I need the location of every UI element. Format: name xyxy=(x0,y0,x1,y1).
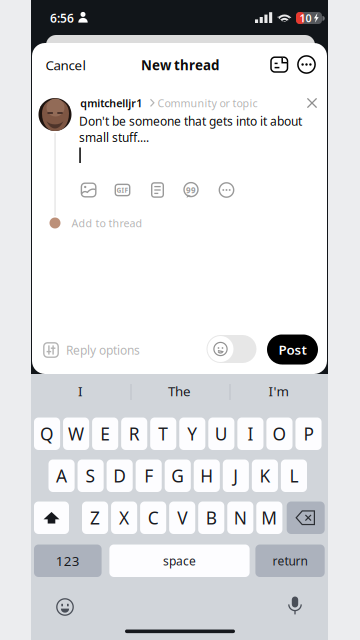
button[interactable]: C xyxy=(140,501,166,534)
button[interactable]: G xyxy=(165,459,191,492)
staticText: small stuff.... xyxy=(79,129,149,145)
staticText: N xyxy=(234,506,247,529)
button[interactable]: Stickers xyxy=(206,335,256,363)
button[interactable]: I'm xyxy=(229,382,328,400)
button[interactable]: return xyxy=(255,544,325,577)
button[interactable]: V xyxy=(169,501,195,534)
staticText: J xyxy=(233,464,238,487)
button[interactable]: F xyxy=(136,459,162,492)
button[interactable]: Dictation xyxy=(286,596,304,617)
button[interactable]: The xyxy=(130,382,229,400)
staticText: 123 xyxy=(56,552,80,570)
staticText: space xyxy=(163,553,196,569)
button[interactable]: M xyxy=(256,501,282,534)
button[interactable]: Post xyxy=(267,334,318,364)
button[interactable]: K xyxy=(252,459,278,492)
button[interactable] xyxy=(34,501,69,534)
staticText: qmitchelljr1 xyxy=(80,96,142,110)
staticText: V xyxy=(177,506,187,529)
staticText: New thread xyxy=(141,56,219,74)
staticText: X xyxy=(119,506,129,529)
button[interactable]: D xyxy=(107,459,133,492)
staticText: I xyxy=(247,422,253,445)
button[interactable]: Reply options xyxy=(43,341,148,358)
button[interactable]: L xyxy=(281,459,307,492)
staticText: Don't be someone that gets into it about xyxy=(79,113,302,129)
button[interactable]: E xyxy=(92,417,118,450)
button[interactable]: Drafts xyxy=(270,55,289,74)
button[interactable]: Y xyxy=(179,417,205,450)
button[interactable]: Z xyxy=(82,501,108,534)
staticText: 6:56 xyxy=(50,10,74,26)
button[interactable]: N xyxy=(227,501,253,534)
staticText: GIF xyxy=(116,186,128,195)
staticText: return xyxy=(273,553,308,569)
staticText: D xyxy=(113,464,126,487)
staticText: Add to thread xyxy=(71,216,142,230)
button[interactable]: I xyxy=(31,382,130,400)
button[interactable]: space xyxy=(109,544,250,577)
staticText: Z xyxy=(90,506,100,529)
staticText: Q xyxy=(40,422,54,445)
button[interactable]: R xyxy=(121,417,147,450)
button[interactable]: A xyxy=(48,459,75,492)
staticText: L xyxy=(289,464,298,487)
staticText: F xyxy=(144,464,153,487)
staticText: R xyxy=(129,422,140,445)
staticText: Y xyxy=(187,422,197,445)
button[interactable]: T xyxy=(150,417,176,450)
staticText: M xyxy=(261,506,277,529)
button[interactable] xyxy=(287,501,325,534)
staticText: W xyxy=(68,422,84,445)
staticText: I'm xyxy=(268,382,288,400)
button[interactable]: Q xyxy=(34,417,60,450)
button[interactable]: I xyxy=(237,417,263,450)
staticText: T xyxy=(158,422,168,445)
staticText: E xyxy=(100,422,110,445)
button[interactable]: W xyxy=(63,417,89,450)
staticText: Cancel xyxy=(45,56,85,74)
button[interactable]: More attachments xyxy=(218,182,234,198)
button[interactable]: Cancel xyxy=(45,58,91,72)
staticText: K xyxy=(259,464,270,487)
button[interactable]: X xyxy=(111,501,137,534)
staticText: S xyxy=(86,464,96,487)
button[interactable]: More options xyxy=(297,55,316,74)
button[interactable]: Add poll xyxy=(149,182,165,198)
staticText: A xyxy=(56,464,67,487)
staticText: H xyxy=(200,464,213,487)
staticText: Reply options xyxy=(66,342,140,358)
button[interactable]: Add to thread xyxy=(49,217,159,229)
button[interactable]: Add GIF xyxy=(114,182,130,198)
staticText: Community or topic xyxy=(157,96,257,110)
staticText: 10 xyxy=(299,11,311,25)
button[interactable]: U xyxy=(208,417,234,450)
staticText: I xyxy=(78,382,83,400)
button[interactable]: S xyxy=(77,459,104,492)
button[interactable]: Community or topic xyxy=(157,96,257,109)
button[interactable]: P xyxy=(295,417,321,450)
button[interactable]: Add photo xyxy=(81,182,97,198)
button[interactable]: O xyxy=(266,417,292,450)
button[interactable]: Remove xyxy=(305,96,320,111)
button[interactable]: Add quote xyxy=(183,182,199,198)
button[interactable]: H xyxy=(194,459,220,492)
staticText: O xyxy=(272,422,286,445)
staticText: C xyxy=(148,506,159,529)
staticText: P xyxy=(303,422,313,445)
staticText: G xyxy=(171,464,184,487)
staticText: B xyxy=(206,506,217,529)
staticText: The xyxy=(168,382,191,400)
button[interactable]: 123 xyxy=(34,544,102,577)
button[interactable]: B xyxy=(198,501,224,534)
button[interactable]: Emoji keyboard xyxy=(56,598,74,616)
staticText: U xyxy=(215,422,228,445)
button[interactable]: J xyxy=(223,459,249,492)
staticText: 99 xyxy=(186,185,196,195)
staticText: Post xyxy=(278,341,306,358)
